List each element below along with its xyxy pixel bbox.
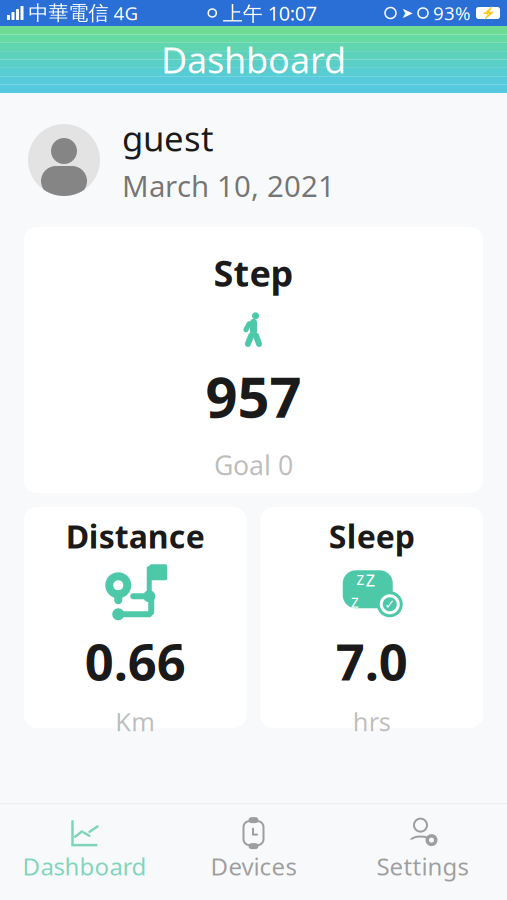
button[interactable]: Settings xyxy=(338,810,507,890)
staticText: 93% xyxy=(433,1,471,25)
button[interactable]: Distance xyxy=(24,507,246,728)
staticText: z xyxy=(365,564,375,592)
staticText: 中華電信 xyxy=(28,1,108,25)
staticText: 0.66 xyxy=(85,627,186,695)
staticText: 957 xyxy=(205,359,301,433)
staticText: z xyxy=(351,589,359,612)
staticText: Settings xyxy=(376,850,468,882)
staticText: Step xyxy=(213,249,293,297)
staticText: guest xyxy=(122,115,214,161)
staticText: Dashboard xyxy=(22,850,146,882)
staticText: Goal 0 xyxy=(214,447,293,483)
staticText: 上午 10:07 xyxy=(223,0,317,26)
staticText: ✓ xyxy=(384,597,395,612)
staticText: Sleep xyxy=(329,515,415,557)
staticText: March 10, 2021 xyxy=(122,166,335,205)
button[interactable]: Step xyxy=(24,227,483,493)
staticText: z xyxy=(356,567,364,590)
button[interactable]: Dashboard xyxy=(0,810,169,890)
staticText: ➤ xyxy=(401,5,413,21)
staticText: Devices xyxy=(210,850,296,882)
staticText: Distance xyxy=(66,515,205,557)
button[interactable]: Devices xyxy=(169,810,338,890)
staticText: 4G xyxy=(113,1,138,25)
staticText: Dashboard xyxy=(161,36,346,83)
button[interactable]: Sleep xyxy=(260,507,483,728)
staticText: 7.0 xyxy=(336,627,408,695)
button[interactable]: Profile photo xyxy=(28,124,100,196)
staticText: hrs xyxy=(353,705,391,738)
staticText: ⚡ xyxy=(480,6,495,20)
staticText: Km xyxy=(115,705,155,738)
